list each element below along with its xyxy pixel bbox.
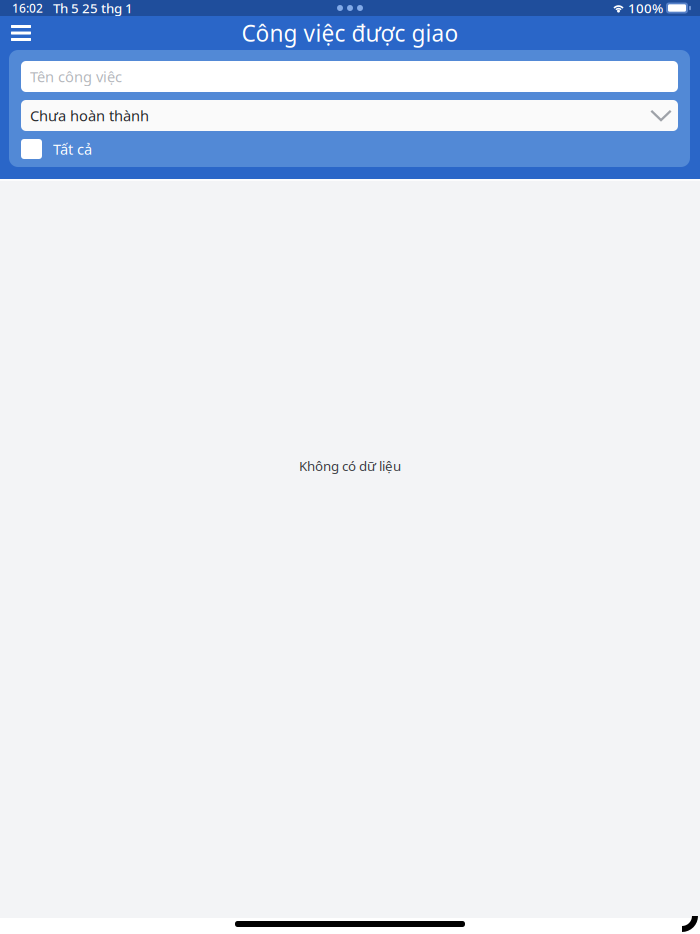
button[interactable]: Tất cả bbox=[21, 139, 678, 159]
staticText: Không có dữ liệu bbox=[299, 457, 401, 475]
staticText: Tên công việc bbox=[30, 67, 122, 86]
staticText: Chưa hoàn thành bbox=[30, 106, 149, 125]
staticText: Công việc được giao bbox=[241, 18, 458, 48]
staticText: Tất cả bbox=[53, 139, 92, 159]
button[interactable]: Tên công việc bbox=[21, 61, 678, 92]
staticText: Th 5 25 thg 1 bbox=[53, 0, 133, 17]
button[interactable]: Chưa hoàn thành bbox=[21, 100, 678, 131]
staticText: 16:02 bbox=[12, 0, 43, 16]
button[interactable]: Menu bbox=[0, 16, 42, 50]
staticText: 100% bbox=[628, 0, 663, 17]
